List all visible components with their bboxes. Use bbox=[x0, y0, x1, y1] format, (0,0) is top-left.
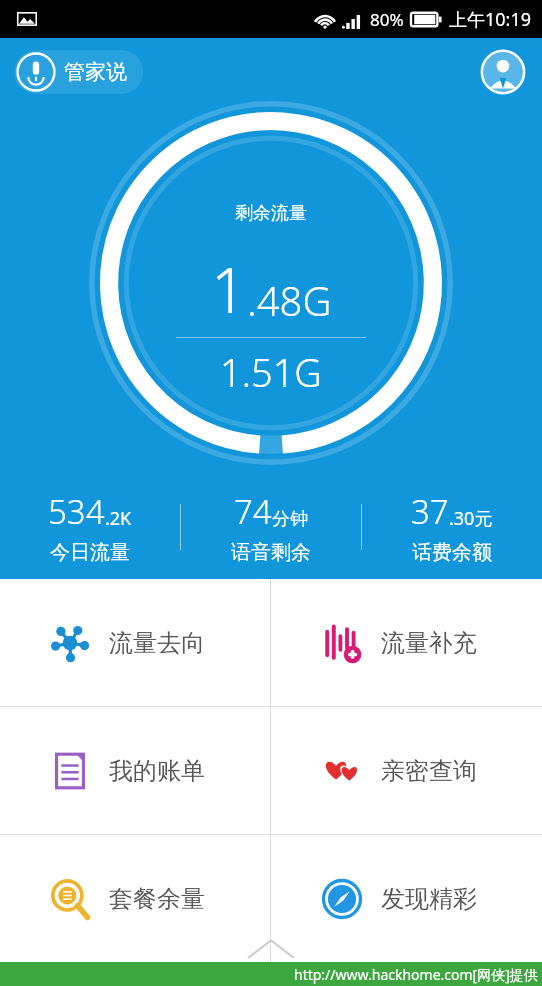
staticText: 1 bbox=[211, 247, 247, 331]
staticText: 亲密查询 bbox=[381, 756, 497, 786]
staticText: 套餐余量 bbox=[109, 884, 225, 914]
staticText: 80% bbox=[370, 8, 404, 31]
staticText: .48G bbox=[247, 273, 332, 327]
staticText: .2K bbox=[105, 506, 132, 531]
staticText: 剩余流量 bbox=[235, 202, 307, 225]
staticText: 1.51G bbox=[220, 346, 322, 398]
button[interactable]: 亲密查询 bbox=[271, 707, 542, 834]
staticText: 我的账单 bbox=[109, 756, 225, 786]
button[interactable]: 我的账单 bbox=[0, 707, 270, 834]
button[interactable]: Profile bbox=[480, 49, 526, 95]
staticText: 37 bbox=[411, 489, 449, 534]
button[interactable]: 套餐余量 bbox=[0, 835, 270, 962]
staticText: .30元 bbox=[449, 506, 493, 531]
button[interactable]: 534 bbox=[0, 489, 180, 565]
staticText: 74 bbox=[234, 489, 272, 534]
staticText: 今日流量 bbox=[50, 540, 130, 565]
staticText: 发现精彩 bbox=[381, 884, 497, 914]
staticText: 流量去向 bbox=[109, 628, 225, 658]
button[interactable]: 管家说 bbox=[14, 50, 143, 94]
staticText: 流量补充 bbox=[381, 628, 497, 658]
button[interactable]: 74 bbox=[181, 489, 361, 565]
button[interactable]: 流量补充 bbox=[271, 579, 542, 706]
button[interactable]: 流量去向 bbox=[0, 579, 270, 706]
staticText: http://www.hackhome.com[网侠]提供 bbox=[294, 965, 538, 984]
staticText: 管家说 bbox=[64, 59, 127, 85]
staticText: 上午10:19 bbox=[449, 7, 532, 32]
button[interactable]: 发现精彩 bbox=[271, 835, 542, 962]
staticText: 534 bbox=[48, 489, 105, 534]
staticText: 语音剩余 bbox=[231, 540, 311, 565]
staticText: 话费余额 bbox=[412, 540, 492, 565]
button[interactable]: 37 bbox=[362, 489, 542, 565]
staticText: 分钟 bbox=[272, 508, 308, 531]
